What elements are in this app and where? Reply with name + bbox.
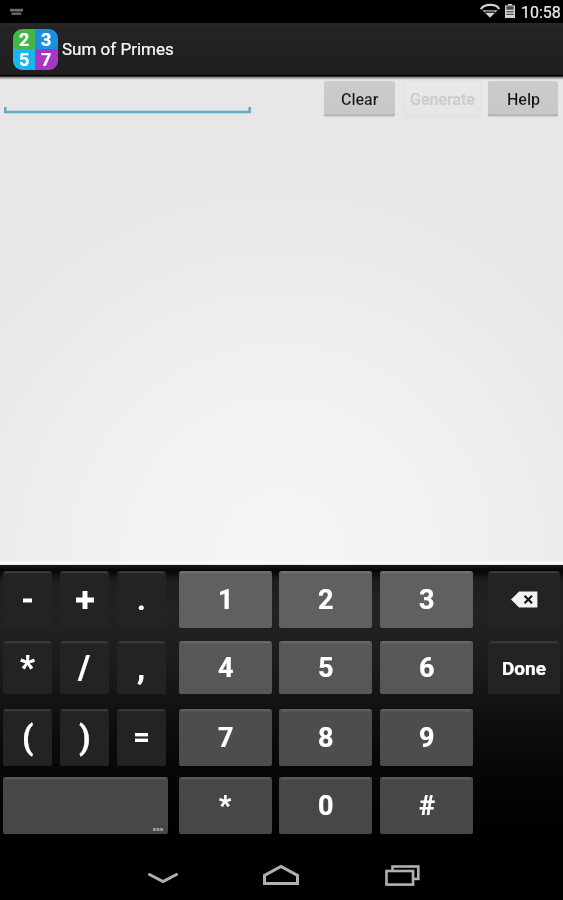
button[interactable]: *: [3, 641, 52, 694]
staticText: *: [20, 648, 35, 687]
button[interactable]: Clear: [324, 81, 395, 117]
staticText: 2: [318, 584, 334, 616]
staticText: 4: [218, 652, 234, 684]
button[interactable]: [60, 571, 109, 628]
button[interactable]: 2: [279, 571, 372, 628]
staticText: 3: [41, 29, 52, 49]
staticText: 7: [41, 49, 52, 70]
button[interactable]: Hide keyboard: [108, 850, 218, 900]
button[interactable]: Help: [488, 81, 558, 117]
staticText: 6: [419, 652, 435, 684]
staticText: Help: [507, 90, 540, 109]
staticText: *: [219, 790, 232, 822]
button[interactable]: #: [380, 777, 473, 834]
button[interactable]: ): [60, 709, 109, 766]
staticText: 7: [218, 722, 234, 754]
button[interactable]: Recent apps: [347, 847, 457, 900]
button[interactable]: 0: [279, 777, 372, 834]
button[interactable]: ,: [117, 641, 166, 694]
staticText: #: [419, 790, 435, 822]
button[interactable]: Done: [488, 641, 560, 694]
button[interactable]: 5: [279, 641, 372, 694]
button[interactable]: .: [117, 571, 166, 628]
staticText: 2: [19, 29, 30, 49]
staticText: 10:58: [521, 3, 561, 22]
staticText: Done: [502, 657, 546, 679]
button[interactable]: /: [60, 641, 109, 694]
staticText: 0: [318, 790, 334, 822]
button[interactable]: [3, 571, 52, 628]
staticText: 3: [419, 584, 435, 616]
button[interactable]: 4: [179, 641, 272, 694]
staticText: Sum of Primes: [62, 39, 174, 59]
staticText: Generate: [410, 90, 475, 109]
staticText: 9: [419, 722, 435, 754]
staticText: (: [22, 718, 34, 757]
staticText: 1: [218, 584, 234, 616]
button[interactable]: (: [3, 709, 52, 766]
other: Space: [3, 777, 168, 834]
button[interactable]: Generate: [404, 81, 481, 117]
staticText: 5: [19, 49, 30, 70]
staticText: ,: [137, 648, 146, 687]
staticText: /: [78, 648, 91, 687]
button[interactable]: Space: [3, 777, 168, 834]
staticText: ): [79, 718, 91, 757]
button[interactable]: *: [179, 777, 272, 834]
button[interactable]: 7: [179, 709, 272, 766]
button[interactable]: 9: [380, 709, 473, 766]
staticText: 8: [318, 722, 334, 754]
button[interactable]: 3: [380, 571, 473, 628]
other: Backspace: [511, 591, 538, 608]
staticText: 5: [318, 652, 334, 684]
button[interactable]: [117, 709, 166, 766]
button[interactable]: 1: [179, 571, 272, 628]
button[interactable]: Home: [226, 847, 336, 900]
staticText: Clear: [341, 90, 379, 109]
staticText: .: [137, 582, 146, 617]
button[interactable]: Backspace: [488, 571, 560, 628]
button[interactable]: 6: [380, 641, 473, 694]
button[interactable]: 8: [279, 709, 372, 766]
